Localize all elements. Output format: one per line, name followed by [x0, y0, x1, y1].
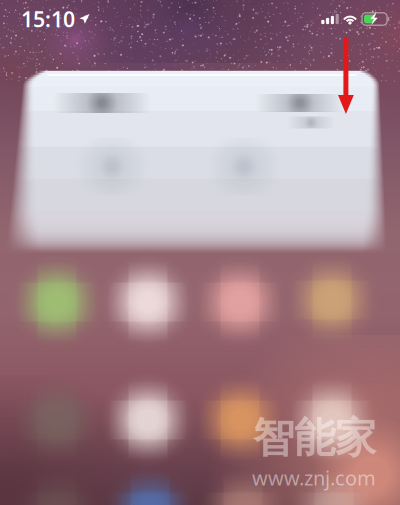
staticText: www.znj.com: [252, 464, 376, 491]
staticText: 15:10: [21, 5, 75, 33]
staticText: 智能家: [253, 413, 376, 463]
